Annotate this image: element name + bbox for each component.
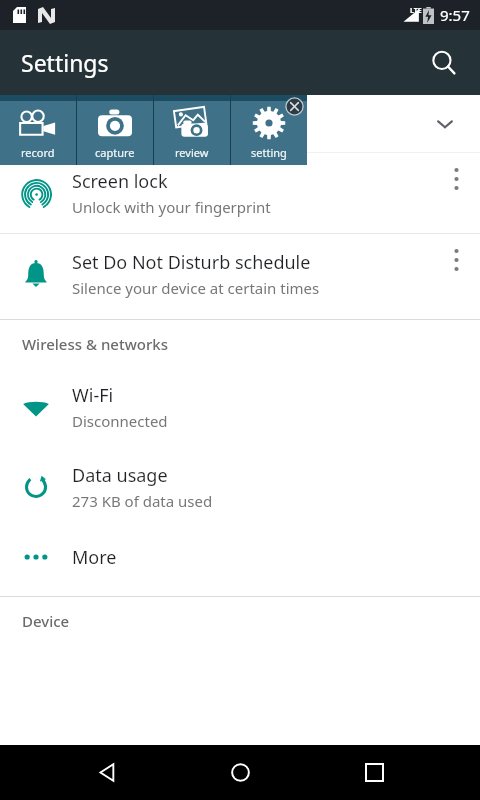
staticText: capture bbox=[95, 145, 135, 160]
staticText: More bbox=[72, 545, 117, 570]
staticText: Suggestions (3) bbox=[22, 113, 139, 135]
button[interactable]: Search bbox=[420, 39, 468, 87]
button[interactable]: Data usage bbox=[0, 447, 480, 527]
staticText: Wireless & networks bbox=[22, 334, 168, 354]
button[interactable]: More options bbox=[432, 153, 480, 233]
staticText: Screen lock bbox=[72, 169, 168, 194]
staticText: setting bbox=[251, 145, 287, 160]
staticText: 9:57 bbox=[440, 5, 470, 25]
button[interactable]: Set Do Not Disturb schedule bbox=[0, 234, 480, 314]
button[interactable]: More options bbox=[432, 234, 480, 314]
button[interactable]: Recent apps bbox=[346, 745, 402, 800]
staticText: record bbox=[21, 145, 55, 160]
button[interactable]: record bbox=[0, 95, 76, 165]
staticText: Wi-Fi bbox=[72, 383, 114, 408]
staticText: Settings bbox=[21, 47, 109, 78]
staticText: Unlock with your fingerprint bbox=[72, 197, 271, 217]
button[interactable]: Wi-Fi bbox=[0, 367, 480, 447]
button[interactable]: Close toolbar bbox=[285, 97, 304, 116]
button[interactable]: capture bbox=[77, 95, 153, 165]
button[interactable]: Screen lock bbox=[0, 153, 480, 233]
staticText: Set Do Not Disturb schedule bbox=[72, 250, 311, 275]
staticText: Silence your device at certain times bbox=[72, 278, 320, 298]
button[interactable]: setting bbox=[231, 95, 307, 165]
button[interactable]: Back bbox=[78, 745, 134, 800]
staticText: 273 KB of data used bbox=[72, 491, 213, 511]
staticText: Device bbox=[22, 611, 70, 631]
button[interactable]: Home bbox=[212, 745, 268, 800]
staticText: review bbox=[175, 145, 209, 160]
button[interactable]: More bbox=[0, 527, 480, 587]
staticText: Disconnected bbox=[72, 411, 168, 431]
staticText: LTE bbox=[410, 6, 422, 16]
button[interactable]: Suggestions (3) bbox=[0, 95, 480, 152]
button[interactable]: review bbox=[154, 95, 230, 165]
staticText: Data usage bbox=[72, 463, 168, 488]
